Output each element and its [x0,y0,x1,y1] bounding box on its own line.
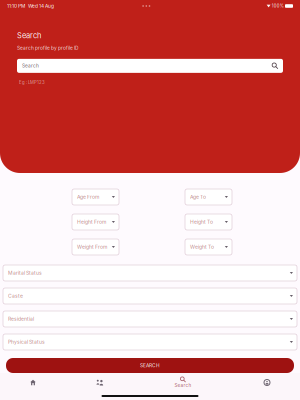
button[interactable]: Age To [185,189,232,205]
staticText: Height From [77,219,106,225]
button[interactable]: Height To [185,214,232,230]
staticText: Physical Status [8,339,45,345]
staticText: Height To [190,219,213,225]
staticText: Search [17,31,41,40]
staticText: Search profile by profile ID [17,45,78,51]
staticText: 100% [272,3,284,9]
button[interactable]: SEARCH [6,358,294,373]
button[interactable]: Physical Status [3,334,297,350]
staticText: Residential [8,316,34,322]
button[interactable]: Search [163,373,203,392]
button[interactable]: Weight From [72,239,119,255]
staticText: Eg : LMP123 [19,80,45,85]
staticText: Weight To [190,244,214,250]
staticText: SEARCH [140,363,160,368]
staticText: Search [174,383,191,388]
staticText: Marital Status [8,270,42,276]
button[interactable]: Residential [3,311,297,327]
button[interactable]: Height From [72,214,119,230]
staticText: Age From [77,194,99,200]
button[interactable]: Profile [247,373,287,392]
button[interactable]: Marital Status [3,265,297,281]
button[interactable]: Matches [80,373,120,392]
staticText: 11:10 PM Wed 14 Aug [7,3,54,9]
button[interactable]: Home [13,373,53,392]
staticText: Age To [190,194,206,200]
button[interactable]: Weight To [185,239,232,255]
staticText: Weight From [77,244,107,250]
button[interactable]: Caste [3,288,297,304]
staticText: Search [22,63,39,69]
staticText: Caste [8,293,23,299]
button[interactable]: Age From [72,189,119,205]
